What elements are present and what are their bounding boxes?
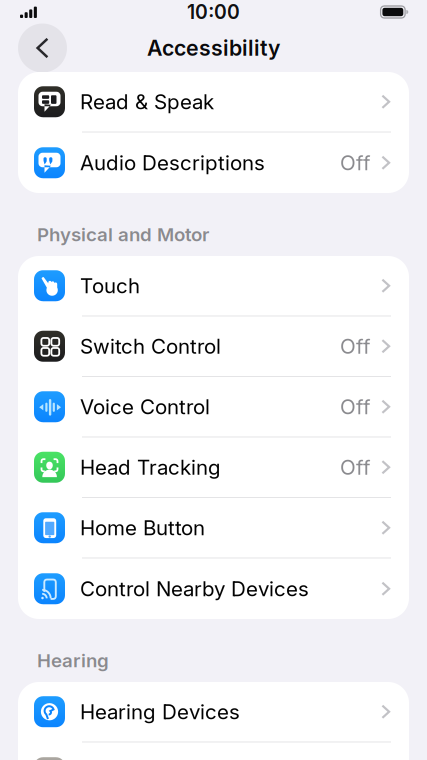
staticText: Touch xyxy=(80,273,140,298)
button[interactable]: Control Nearby Devices xyxy=(18,558,409,619)
button[interactable]: Sound Recognition xyxy=(18,742,409,760)
button[interactable]: Read & Speak xyxy=(18,72,409,132)
button[interactable]: Back xyxy=(18,23,67,72)
button[interactable]: Audio Descriptions xyxy=(18,132,409,193)
button[interactable]: Hearing Devices xyxy=(18,682,409,742)
staticText: Off xyxy=(340,334,371,359)
button[interactable]: Voice Control xyxy=(18,377,409,437)
staticText: 10:00 xyxy=(187,0,240,24)
button[interactable]: Switch Control xyxy=(18,316,409,377)
staticText: Physical and Motor xyxy=(37,223,209,246)
staticText: Audio Descriptions xyxy=(80,150,265,175)
staticText: Off xyxy=(340,150,371,175)
staticText: Home Button xyxy=(80,515,205,540)
staticText: Voice Control xyxy=(80,394,210,419)
staticText: Off xyxy=(340,394,371,419)
staticText: Hearing Devices xyxy=(80,699,240,724)
button[interactable]: Home Button xyxy=(18,498,409,558)
staticText: Off xyxy=(340,455,371,480)
button[interactable]: Head Tracking xyxy=(18,437,409,498)
staticText: Switch Control xyxy=(80,334,221,359)
staticText: Hearing xyxy=(37,649,109,672)
staticText: Read & Speak xyxy=(80,89,214,114)
staticText: Head Tracking xyxy=(80,455,221,480)
staticText: Control Nearby Devices xyxy=(80,576,309,601)
staticText: Accessibility xyxy=(147,35,280,61)
button[interactable]: Touch xyxy=(18,256,409,316)
